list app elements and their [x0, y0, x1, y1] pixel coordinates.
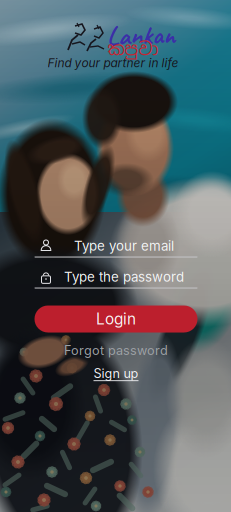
button[interactable]: Sign up — [71, 366, 161, 380]
button[interactable]: Type the password — [34, 266, 197, 288]
staticText: Type your email — [74, 238, 174, 254]
button[interactable]: Login — [34, 305, 197, 332]
staticText: Find your partner in life — [47, 56, 178, 70]
button[interactable]: Type your email — [34, 235, 197, 257]
staticText: Login — [96, 310, 136, 328]
staticText: Forgot password — [64, 343, 168, 358]
button[interactable]: Forgot password — [51, 343, 181, 357]
staticText: Lankan — [107, 18, 175, 52]
staticText: Type the password — [64, 269, 184, 285]
staticText: Sign up — [93, 366, 138, 381]
staticText: කපුවා — [107, 38, 158, 60]
